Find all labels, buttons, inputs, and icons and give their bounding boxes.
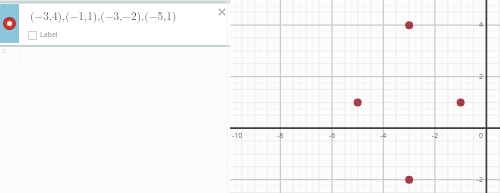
staticText: -6 [322, 131, 342, 141]
staticText: -8 [270, 131, 290, 141]
button[interactable]: Point style [3, 17, 16, 30]
button[interactable]: Label [28, 30, 58, 40]
staticText: -10 [232, 131, 252, 141]
staticText: 0 [468, 131, 483, 141]
staticText: 4 [468, 20, 483, 30]
staticText: -2 [425, 131, 445, 141]
button[interactable]: 1 [0, 0, 230, 46]
staticText: 1 [2, 4, 6, 12]
staticText: 2 [468, 72, 483, 82]
staticText: 2 [2, 47, 6, 55]
staticText: -4 [373, 131, 393, 141]
staticText: (−3,4),(−1,1),(−3,−2),(−5,1) [30, 7, 177, 23]
button[interactable]: Close [218, 8, 226, 16]
staticText: Label [40, 30, 58, 40]
staticText: -2 [468, 175, 483, 185]
